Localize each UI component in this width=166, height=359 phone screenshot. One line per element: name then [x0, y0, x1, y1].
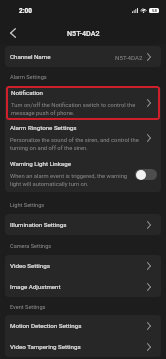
button[interactable]: Warning light linkage toggle [135, 169, 157, 180]
staticText: Image Adjustment [10, 283, 147, 290]
staticText: Alarm Settings [10, 74, 47, 81]
button[interactable]: Notification [6, 86, 160, 120]
staticText: Warning Light Linkage [10, 160, 71, 167]
button[interactable]: Channel Name [5, 46, 161, 67]
staticText: Video Settings [10, 262, 147, 269]
staticText: Light Settings [10, 202, 45, 209]
staticText: 2:00 [19, 7, 32, 15]
staticText: Notification [11, 89, 43, 96]
button[interactable]: Illumination Settings [5, 214, 161, 235]
staticText: Alarm Ringtone Settings [10, 124, 77, 131]
staticText: Turn on/off the Notification switch to c… [11, 102, 143, 117]
staticText: Camera Settings [10, 243, 52, 250]
button[interactable]: Warning Light Linkage [5, 156, 161, 192]
staticText: N5T-4DA2 [67, 29, 100, 37]
staticText: Illumination Settings [10, 221, 147, 228]
staticText: N5T-4DA2 [115, 54, 143, 61]
button[interactable]: Image Adjustment [5, 276, 161, 297]
button[interactable]: Video Tampering Settings [5, 336, 161, 357]
staticText: Motion Detection Settings [10, 322, 147, 329]
button[interactable]: Alarm Ringtone Settings [5, 120, 161, 156]
staticText: Personalize the sound of the siren, and … [10, 137, 143, 152]
staticText: 58 [152, 8, 157, 13]
staticText: Video Tampering Settings [10, 343, 147, 350]
staticText: When an alarm event is triggered, the wa… [10, 173, 131, 188]
button[interactable]: Back [0, 21, 25, 44]
staticText: Event Settings [10, 304, 46, 311]
staticText: Channel Name [10, 53, 51, 60]
button[interactable]: Video Settings [5, 255, 161, 276]
button[interactable]: Motion Detection Settings [5, 315, 161, 336]
